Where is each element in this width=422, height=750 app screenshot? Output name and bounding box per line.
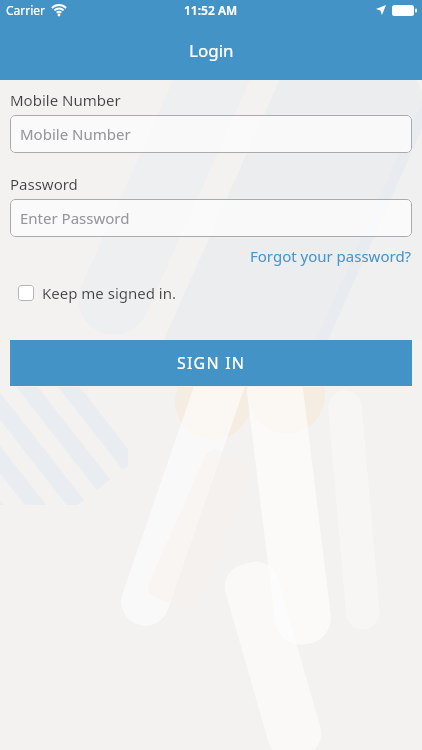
button[interactable]: Keep me signed in.: [18, 283, 177, 303]
staticText: Enter Password: [20, 208, 130, 228]
button[interactable]: Forgot your password?: [250, 246, 412, 266]
staticText: SIGN IN: [177, 352, 246, 374]
button[interactable]: SIGN IN: [10, 340, 412, 386]
button[interactable]: Mobile Number: [10, 115, 412, 153]
staticText: Keep me signed in.: [42, 283, 177, 303]
staticText: Mobile Number: [20, 124, 131, 144]
staticText: Password: [10, 174, 78, 194]
button[interactable]: Enter Password: [10, 199, 412, 237]
staticText: Mobile Number: [10, 90, 121, 110]
staticText: Login: [189, 39, 234, 62]
staticText: 11:52 AM: [184, 2, 238, 18]
staticText: Carrier: [6, 2, 46, 18]
